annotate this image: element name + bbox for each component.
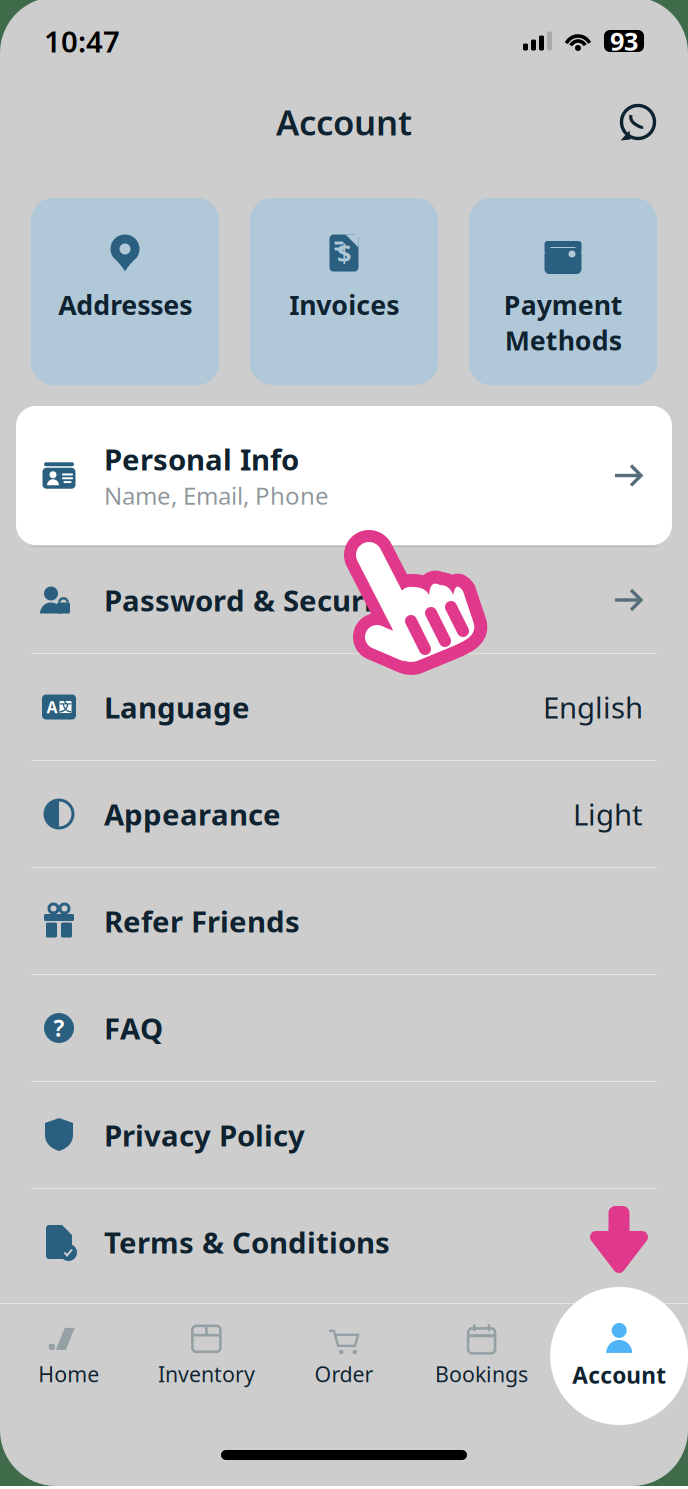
button[interactable]: Home [0, 1304, 138, 1408]
button[interactable]: Payment Methods [469, 198, 657, 385]
button[interactable]: Addresse​s [31, 198, 219, 385]
staticText: FAQ [104, 1008, 163, 1047]
staticText: Payment Methods [503, 287, 622, 358]
button[interactable]: Account [550, 1304, 688, 1408]
button[interactable]: Personal Info [16, 406, 672, 545]
staticText: 文 [59, 700, 71, 714]
staticText: English [543, 687, 643, 726]
staticText: Personal Info [104, 440, 299, 479]
staticText: Account [276, 99, 412, 145]
button[interactable]: Refer Friends [0, 868, 688, 974]
button[interactable]: Inventory [138, 1304, 275, 1408]
staticText: Name, Email, Phone [104, 479, 329, 511]
staticText: Light [573, 794, 643, 833]
button[interactable]: Appearance [0, 761, 688, 867]
staticText: Home [38, 1360, 99, 1388]
staticText: Order [314, 1360, 373, 1388]
button[interactable]: Privacy Policy [0, 1082, 688, 1188]
staticText: Account [572, 1360, 666, 1390]
staticText: Bookings [435, 1360, 528, 1388]
button[interactable]: Password & Security [0, 547, 688, 653]
staticText: Password & Security [104, 580, 403, 619]
staticText: Language [104, 687, 250, 726]
button[interactable]: Order [275, 1304, 413, 1408]
staticText: $ [337, 236, 351, 269]
staticText: A [46, 696, 57, 718]
staticText: ? [53, 1013, 64, 1043]
button[interactable]: Bookings [413, 1304, 550, 1408]
staticText: Privacy Policy [104, 1115, 305, 1154]
button[interactable]: ? [0, 975, 688, 1081]
button[interactable]: A [0, 654, 688, 760]
staticText: Addresse​s [58, 287, 192, 322]
staticText: Inventory [158, 1360, 255, 1388]
button[interactable]: WhatsApp support [618, 102, 658, 142]
staticText: Terms & Conditions [104, 1222, 390, 1261]
button[interactable]: Terms & Conditions [0, 1189, 688, 1295]
staticText: Appearance [104, 794, 281, 833]
button[interactable]: $ [250, 198, 438, 385]
staticText: 93 [610, 24, 638, 58]
staticText: Invoices [289, 287, 399, 322]
staticText: 10:47 [44, 21, 120, 60]
staticText: Refer Friends [104, 901, 300, 940]
